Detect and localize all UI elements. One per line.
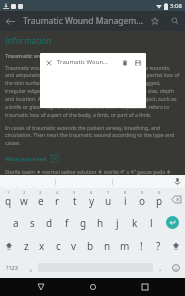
staticText: What you need	[5, 155, 47, 162]
staticText: r	[55, 194, 60, 208]
staticText: 5	[73, 190, 76, 195]
button[interactable]: 7	[100, 188, 117, 211]
staticText: x	[39, 239, 45, 253]
button[interactable]: Recents	[133, 278, 157, 296]
button[interactable]: Favorite	[145, 11, 165, 31]
button[interactable]: Home	[81, 278, 105, 296]
staticText: 9	[141, 190, 144, 195]
staticText: e	[38, 194, 44, 208]
button[interactable]: 5	[66, 188, 83, 211]
staticText: j	[116, 216, 119, 230]
staticText: 7	[107, 190, 110, 195]
staticText: a	[13, 216, 19, 230]
button[interactable]: Voice input	[169, 175, 185, 188]
staticText: u	[105, 194, 112, 208]
button[interactable]: x	[34, 234, 50, 257]
staticText: g	[80, 216, 87, 230]
staticText: ,	[30, 262, 33, 273]
staticText: ?123	[6, 264, 18, 271]
button[interactable]: .	[153, 257, 167, 278]
button[interactable]: ?	[150, 234, 167, 257]
button[interactable]: 8	[117, 188, 134, 211]
button[interactable]: b	[82, 234, 99, 257]
staticText: Sterile basin ♦ normal saline solution ♦…	[5, 168, 180, 175]
button[interactable]: s	[24, 211, 41, 234]
button[interactable]: Expand	[51, 155, 58, 162]
staticText: k	[132, 216, 138, 230]
button[interactable]: Shift	[0, 234, 18, 257]
button[interactable]: l	[143, 211, 160, 234]
button[interactable]: Save	[131, 56, 144, 69]
button[interactable]: f	[58, 211, 75, 234]
staticText: 8	[124, 190, 127, 195]
button[interactable]: c	[50, 234, 66, 257]
staticText: 1	[7, 190, 10, 195]
button[interactable]: 0	[151, 188, 168, 211]
staticText: Traumatic wounds include abrasions, lace…	[5, 64, 180, 119]
staticText: 4	[56, 190, 59, 195]
button[interactable]: Back	[0, 11, 20, 31]
staticText: n	[104, 239, 111, 253]
staticText: h	[97, 216, 104, 230]
button[interactable]: 2	[16, 188, 32, 211]
staticText: 0	[158, 190, 161, 195]
staticText: t	[73, 194, 77, 208]
button[interactable]: h	[92, 211, 109, 234]
staticText: v	[71, 239, 77, 253]
button[interactable]: ,	[24, 257, 38, 278]
staticText: 3:08	[170, 2, 182, 10]
button[interactable]: v	[66, 234, 82, 257]
button[interactable]: 4	[49, 188, 66, 211]
button[interactable]: Back	[29, 278, 53, 296]
button[interactable]: n	[99, 234, 116, 257]
staticText: s	[30, 216, 35, 230]
staticText: b	[87, 239, 94, 253]
staticText: f	[65, 216, 69, 230]
button[interactable]: z	[18, 234, 34, 257]
staticText: 2	[23, 190, 26, 195]
staticText: 3	[39, 190, 42, 195]
staticText: w	[20, 194, 28, 208]
button[interactable]: 9	[134, 188, 151, 211]
staticText: 6	[90, 190, 93, 195]
staticText: c	[56, 239, 61, 253]
button[interactable]: Shift	[167, 234, 185, 257]
button[interactable]: 1	[0, 188, 16, 211]
staticText: y	[89, 194, 95, 208]
staticText: o	[139, 194, 146, 208]
staticText: i	[124, 194, 127, 208]
button[interactable]: Search	[165, 11, 185, 31]
button[interactable]: ?123	[0, 257, 24, 278]
button[interactable]: 6	[83, 188, 100, 211]
button[interactable]: Enter	[160, 211, 185, 234]
button[interactable]: Delete	[118, 56, 131, 69]
button[interactable]: j	[109, 211, 126, 234]
button[interactable]: d	[41, 211, 58, 234]
staticText: q	[5, 194, 12, 208]
button[interactable]: a	[8, 211, 24, 234]
staticText: !	[140, 239, 143, 253]
staticText: l	[150, 216, 153, 230]
button[interactable]: g	[75, 211, 92, 234]
button[interactable]: m	[116, 234, 133, 257]
button[interactable]: 3	[32, 188, 49, 211]
button[interactable]: !	[133, 234, 150, 257]
staticText: .	[159, 262, 162, 273]
staticText: Traumatic Wound Management	[23, 15, 145, 27]
staticText: Information	[5, 35, 52, 46]
staticText: ?	[156, 239, 161, 253]
button[interactable]: Backspace	[168, 188, 185, 211]
staticText: m	[120, 239, 130, 253]
button[interactable]: Close	[42, 56, 55, 69]
staticText: d	[46, 216, 53, 230]
staticText: p	[156, 194, 163, 208]
button[interactable]: k	[126, 211, 143, 234]
staticText: In cases of traumatic wounds the patient…	[5, 124, 180, 147]
button[interactable]: Emoji	[167, 257, 185, 278]
staticText: Traumatic wound management	[5, 52, 92, 59]
